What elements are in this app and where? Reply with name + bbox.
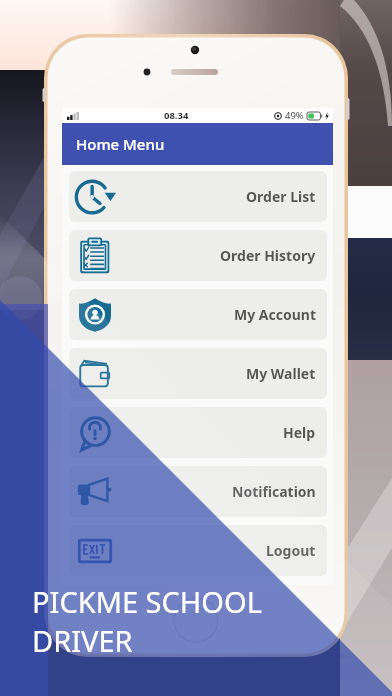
staticText: 49% <box>285 109 304 122</box>
staticText: PICKME SCHOOL <box>32 582 262 621</box>
staticText: DRIVER <box>32 621 133 660</box>
button[interactable]: Home Menu <box>62 123 333 165</box>
button[interactable]: Logout <box>69 525 327 576</box>
button[interactable]: My Account <box>69 289 327 340</box>
staticText: Help <box>283 423 316 442</box>
staticText: Notification <box>232 482 316 501</box>
staticText: My Account <box>234 305 316 324</box>
staticText: Order History <box>220 246 316 265</box>
staticText: Logout <box>266 541 316 560</box>
button[interactable]: Order List <box>69 171 327 222</box>
staticText: Order List <box>246 187 316 206</box>
button[interactable]: Order History <box>69 230 327 281</box>
button[interactable]: Notification <box>69 466 327 517</box>
staticText: 08.34 <box>164 109 189 122</box>
button[interactable]: My Wallet <box>69 348 327 399</box>
button[interactable]: Help <box>69 407 327 458</box>
staticText: My Wallet <box>246 364 316 383</box>
staticText: Home Menu <box>76 134 165 154</box>
